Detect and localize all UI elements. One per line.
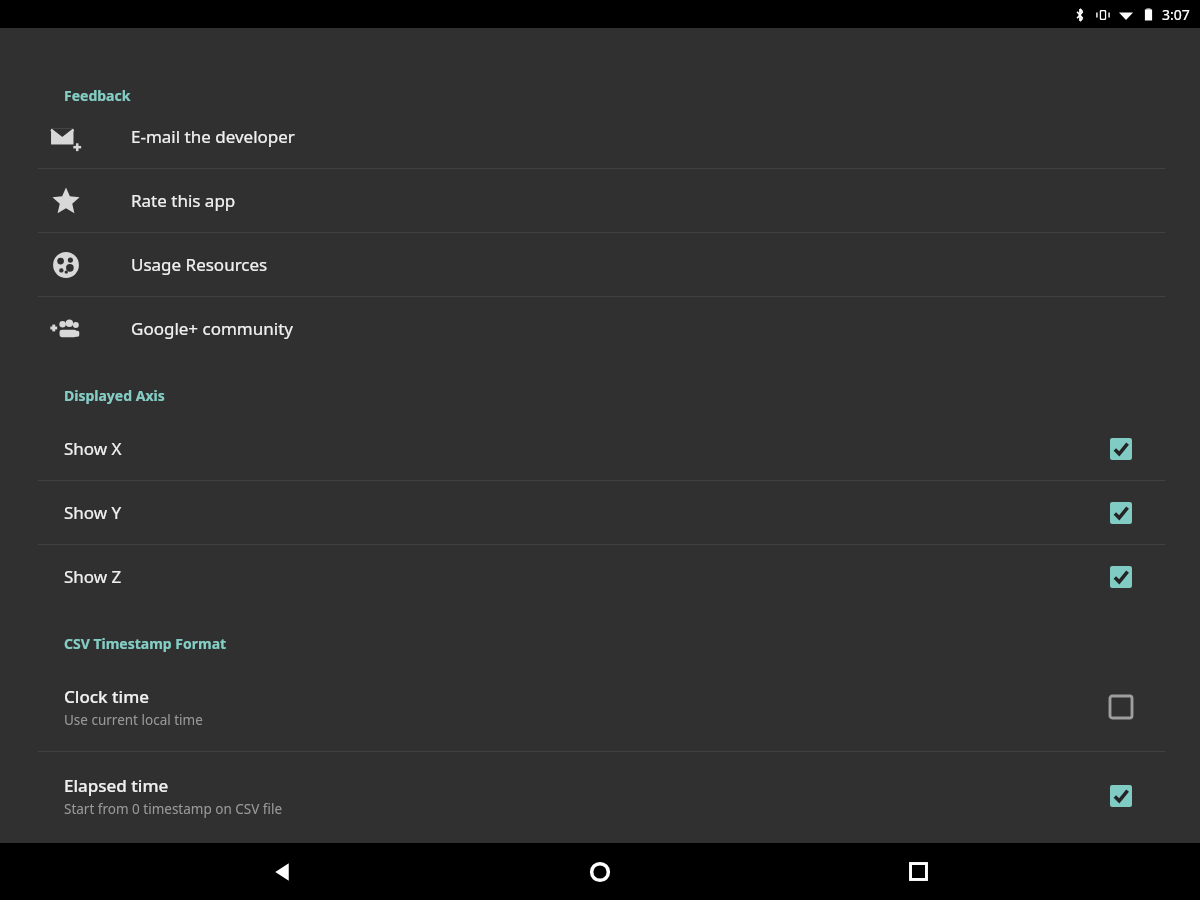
button[interactable]: Clock time [0, 663, 1200, 751]
staticText: Feedback [64, 86, 131, 105]
staticText: 3:07 [1162, 5, 1190, 24]
button[interactable]: Back [248, 843, 318, 900]
button[interactable]: Elapsed time [0, 752, 1200, 840]
staticText: Rate this app [131, 189, 236, 212]
staticText: E-mail the developer [131, 125, 295, 148]
staticText: Show Z [64, 565, 1110, 588]
staticText: Show X [64, 437, 1110, 460]
button[interactable]: Google+ community [0, 297, 1200, 360]
staticText: Usage Resources [131, 253, 268, 276]
staticText: CSV Timestamp Format [64, 634, 227, 653]
staticText: Show Y [64, 501, 1110, 524]
staticText: Google+ community [131, 317, 293, 340]
button[interactable]: Show X [0, 417, 1200, 480]
button[interactable]: Usage Resources [0, 233, 1200, 296]
button[interactable]: Rate this app [0, 169, 1200, 232]
staticText: Use current local time [64, 711, 203, 729]
button[interactable]: Show Z [0, 545, 1200, 608]
staticText: Elapsed time [64, 774, 169, 797]
staticText: Displayed Axis [64, 386, 165, 405]
button[interactable]: Show Y [0, 481, 1200, 544]
staticText: Start from 0 timestamp on CSV file [64, 800, 283, 818]
button[interactable]: Recent apps [883, 843, 953, 900]
button[interactable]: E-mail the developer [0, 105, 1200, 168]
button[interactable]: Home [565, 843, 635, 900]
staticText: Clock time [64, 685, 149, 708]
